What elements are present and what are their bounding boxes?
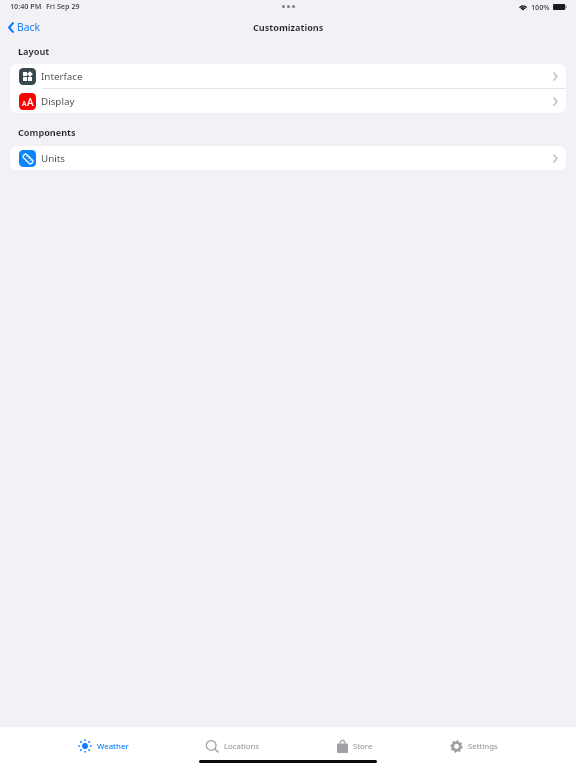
- button[interactable]: Units: [10, 146, 566, 170]
- button[interactable]: Weather: [66, 731, 141, 761]
- staticText: Locations: [224, 741, 260, 752]
- button[interactable]: Settings: [438, 731, 510, 761]
- button[interactable]: A: [10, 89, 566, 113]
- staticText: Settings: [468, 741, 498, 752]
- button[interactable]: Locations: [194, 731, 272, 761]
- staticText: Components: [18, 126, 76, 138]
- staticText: Back: [17, 20, 40, 34]
- staticText: A: [27, 95, 34, 109]
- staticText: Interface: [41, 70, 83, 83]
- staticText: Units: [41, 152, 65, 165]
- staticText: Weather: [97, 741, 129, 752]
- button[interactable]: Interface: [10, 64, 566, 88]
- staticText: 10:40 PM: [10, 1, 42, 11]
- button[interactable]: Store: [325, 731, 385, 761]
- staticText: A: [22, 99, 27, 109]
- staticText: Fri Sep 29: [46, 1, 80, 11]
- button[interactable]: Back: [4, 17, 44, 37]
- staticText: Store: [353, 741, 373, 752]
- staticText: Display: [41, 95, 75, 108]
- staticText: Customizations: [253, 21, 324, 33]
- staticText: Layout: [18, 45, 50, 57]
- staticText: 100%: [531, 2, 550, 12]
